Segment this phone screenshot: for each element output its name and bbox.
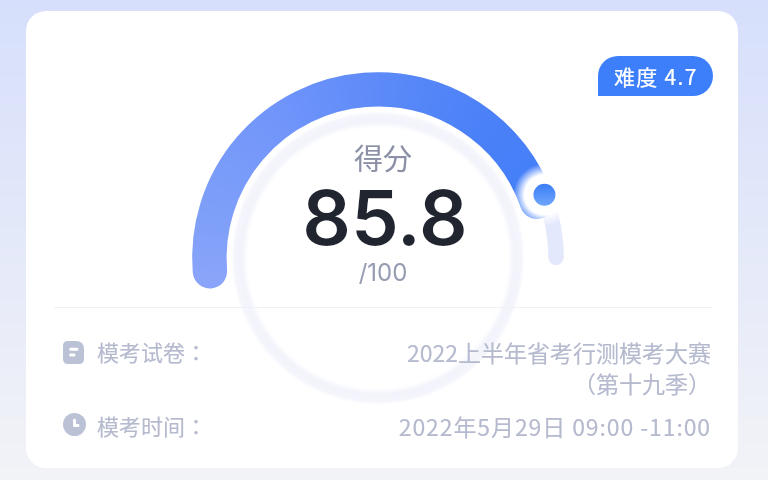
- other: Mock exam paper: [63, 341, 84, 364]
- staticText: 2022年5月29日 09:00 -11:00: [208, 409, 711, 442]
- staticText: 得分: [183, 136, 583, 178]
- staticText: 2022上半年省考行测模考大赛 （第十九季）: [208, 335, 711, 400]
- button[interactable]: 难度 4.7: [598, 56, 713, 96]
- button[interactable]: Mock exam paper: [63, 335, 711, 400]
- button[interactable]: Mock exam time: [63, 409, 711, 442]
- staticText: 模考时间：: [97, 409, 208, 441]
- staticText: 难度 4.7: [614, 61, 698, 91]
- staticText: 模考试卷：: [97, 335, 208, 367]
- staticText: /100: [183, 258, 583, 287]
- staticText: 85.8: [185, 171, 585, 263]
- other: Mock exam time: [63, 413, 86, 436]
